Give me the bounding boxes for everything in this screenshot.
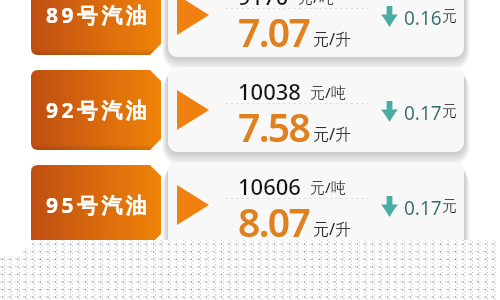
button[interactable]: 95号汽油: [31, 165, 161, 240]
button[interactable]: 10038: [168, 67, 464, 152]
staticText: 元/吨: [310, 82, 346, 102]
staticText: 元: [442, 102, 457, 121]
staticText: 7.58: [238, 100, 310, 152]
staticText: 元/吨: [310, 177, 346, 197]
staticText: 92号汽油: [46, 96, 151, 125]
staticText: 95号汽油: [46, 191, 151, 220]
staticText: 元/升: [313, 28, 352, 50]
staticText: 10038: [238, 76, 301, 106]
staticText: 7.07: [238, 5, 310, 57]
staticText: 元/吨: [298, 0, 334, 7]
staticText: 89号汽油: [46, 1, 151, 30]
other: 价格下降: [381, 101, 398, 122]
staticText: 元: [442, 7, 457, 26]
button[interactable]: 89号汽油: [31, 0, 161, 55]
staticText: 9170: [238, 0, 289, 11]
button[interactable]: 92号汽油: [31, 70, 161, 150]
staticText: 元: [442, 197, 457, 216]
button[interactable]: 10606: [168, 162, 464, 240]
button[interactable]: 9170: [168, 0, 464, 57]
staticText: 8.07: [238, 195, 310, 240]
staticText: 0.16: [404, 5, 442, 31]
other: 价格下降: [381, 6, 398, 27]
staticText: 元/升: [313, 123, 352, 145]
staticText: 10606: [238, 171, 301, 201]
staticText: 元/升: [313, 218, 352, 240]
staticText: 0.17: [404, 100, 442, 126]
staticText: 0.17: [404, 195, 442, 221]
other: 价格下降: [381, 196, 398, 217]
